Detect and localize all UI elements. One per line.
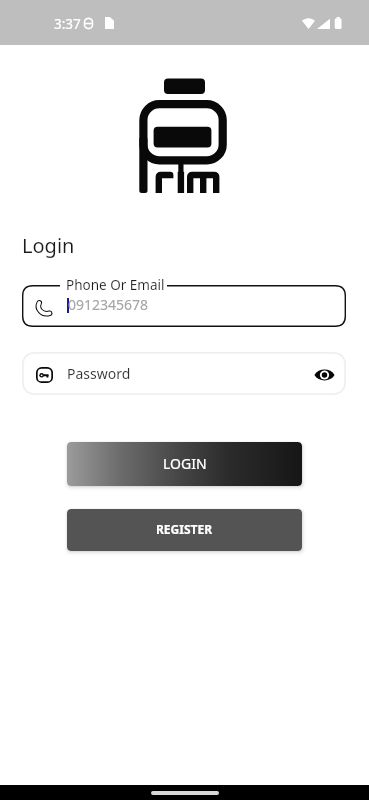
button[interactable]: Password	[22, 352, 346, 395]
button[interactable]: Phone Or Email	[22, 285, 346, 327]
staticText: Password	[67, 364, 131, 383]
staticText: 3:37	[54, 15, 81, 33]
staticText: Login	[22, 232, 75, 259]
staticText: LOGIN	[163, 454, 207, 473]
button[interactable]: REGISTER	[67, 509, 302, 551]
staticText: 0912345678	[68, 295, 149, 314]
staticText: REGISTER	[156, 521, 213, 537]
button[interactable]: LOGIN	[67, 442, 302, 486]
button[interactable]: Show password	[310, 360, 339, 389]
staticText: Phone Or Email	[66, 276, 165, 294]
